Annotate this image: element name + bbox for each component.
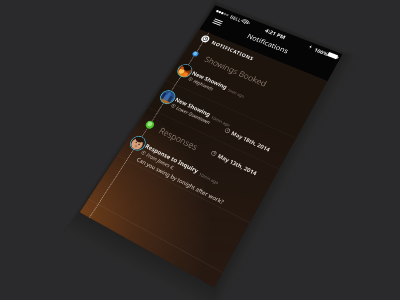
button[interactable]: Item icon	[127, 133, 149, 153]
staticText: Highlands	[192, 78, 215, 92]
staticText: From James K.	[145, 151, 177, 171]
staticText: May 18th, 2014	[230, 129, 272, 153]
button[interactable]: Response to Inquiry	[117, 134, 263, 223]
staticText: Can you swing by tonight after work?	[135, 156, 225, 206]
staticText: Notifications	[204, 15, 336, 74]
staticText: 10min ago	[210, 115, 231, 127]
staticText: Responses	[157, 125, 200, 153]
button[interactable]: Item icon	[143, 119, 156, 130]
staticText: New Showing	[190, 69, 229, 91]
staticText: BELL	[229, 14, 243, 23]
button[interactable]: Open menu	[210, 17, 225, 27]
button[interactable]: New Showing	[168, 62, 307, 135]
staticText: 10min ago	[198, 171, 220, 185]
staticText: NOTIFICATIONS	[210, 39, 255, 62]
staticText: May 13th, 2014	[216, 152, 259, 177]
staticText: 4:21 PM	[264, 27, 287, 41]
staticText: 100%	[313, 46, 330, 57]
button[interactable]: May 13th, 2014	[210, 149, 259, 177]
button[interactable]: Item icon	[157, 88, 178, 106]
button[interactable]: Item icon	[191, 50, 200, 58]
staticText: Lower Downtown	[175, 105, 212, 125]
button[interactable]: Item icon	[174, 62, 195, 80]
button[interactable]: Item icon	[199, 34, 211, 44]
staticText: 5min ago	[227, 87, 246, 99]
staticText: Showings Booked	[203, 54, 269, 89]
staticText: New Showing	[173, 96, 212, 118]
staticText: Response to Inquiry	[144, 142, 200, 175]
button[interactable]: New Showing	[151, 88, 291, 165]
